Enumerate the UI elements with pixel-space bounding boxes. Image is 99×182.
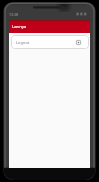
staticText: Logout [16, 40, 30, 45]
staticText: 13:38 [9, 12, 18, 17]
button[interactable]: Logout [11, 35, 89, 49]
staticText: Lannya [12, 24, 27, 30]
